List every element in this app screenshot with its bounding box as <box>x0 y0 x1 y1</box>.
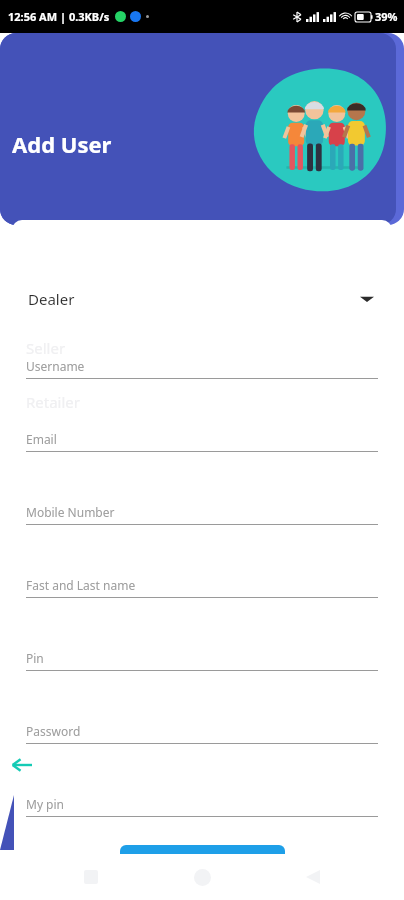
staticText: Retailer <box>26 392 81 412</box>
button[interactable]: Home <box>182 857 222 897</box>
staticText: SUBMIT <box>176 858 229 877</box>
button[interactable]: Back <box>293 857 333 897</box>
staticText: Seller <box>26 338 66 358</box>
staticText: Mobile Number <box>26 504 115 520</box>
button[interactable]: Pin <box>26 650 378 671</box>
staticText: Email <box>26 431 57 447</box>
button[interactable]: Recents <box>71 857 111 897</box>
staticText: 39% <box>375 9 398 24</box>
staticText: Dealer <box>28 289 75 309</box>
staticText: Password <box>26 723 81 739</box>
staticText: Username <box>26 358 85 374</box>
button[interactable]: Mobile Number <box>26 504 378 525</box>
staticText: My pin <box>26 796 65 812</box>
button[interactable]: Email <box>26 431 378 452</box>
button[interactable]: SUBMIT <box>120 845 285 880</box>
button[interactable]: Back <box>4 748 38 782</box>
button[interactable]: Dealer <box>12 278 392 320</box>
button[interactable]: Username <box>26 358 378 379</box>
staticText: Add User <box>12 129 112 159</box>
button[interactable]: Fast and Last name <box>26 577 378 598</box>
staticText: Pin <box>26 650 44 666</box>
button[interactable]: Password <box>26 723 378 744</box>
staticText: 12:56 AM | 0.3KB/s <box>8 9 110 24</box>
staticText: Fast and Last name <box>26 577 136 593</box>
button[interactable]: My pin <box>26 796 378 817</box>
